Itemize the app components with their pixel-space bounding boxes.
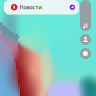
staticText: Новости bbox=[19, 4, 41, 11]
button[interactable]: Новости bbox=[4, 0, 79, 14]
button[interactable]: Do Not Disturb bbox=[80, 48, 91, 59]
button[interactable]: Contacts bbox=[80, 34, 91, 45]
button[interactable]: Now Playing bbox=[80, 0, 91, 31]
